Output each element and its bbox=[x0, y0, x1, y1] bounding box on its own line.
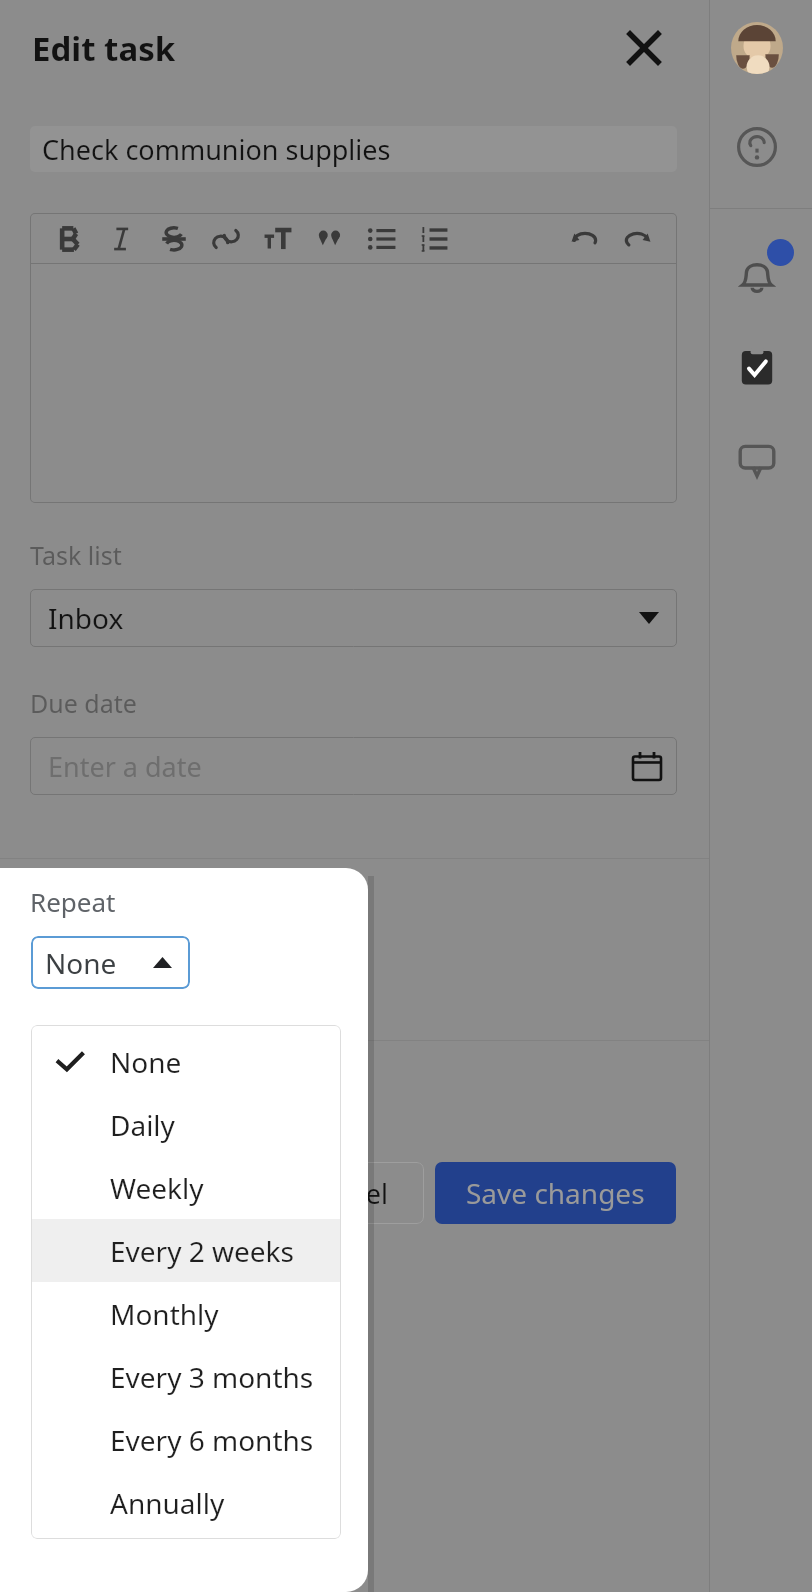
button[interactable]: Tasks bbox=[725, 335, 789, 399]
button[interactable]: Bulleted list bbox=[356, 214, 408, 264]
staticText: Inbox bbox=[48, 599, 124, 637]
button[interactable]: Weekly bbox=[31, 1156, 341, 1219]
staticText: Task list bbox=[30, 538, 122, 572]
staticText: Cancel bbox=[304, 1175, 389, 1212]
button[interactable]: Annually bbox=[31, 1471, 341, 1534]
button[interactable]: Italic bbox=[96, 214, 148, 264]
button[interactable]: Account bbox=[731, 22, 783, 74]
button[interactable]: Notifications bbox=[725, 245, 789, 309]
staticText: Weekly bbox=[110, 1169, 204, 1207]
button[interactable]: Help bbox=[725, 115, 789, 179]
staticText: Repeat bbox=[30, 884, 116, 919]
staticText: None bbox=[45, 944, 117, 982]
button[interactable]: Every 6 months bbox=[31, 1408, 341, 1471]
button[interactable]: Undo bbox=[559, 214, 611, 264]
button[interactable]: Enter a date bbox=[30, 737, 677, 795]
button[interactable]: Save changes bbox=[435, 1162, 676, 1224]
staticText: None bbox=[110, 1043, 182, 1081]
button[interactable]: Close bbox=[614, 18, 674, 78]
button[interactable]: Every 3 months bbox=[31, 1345, 341, 1408]
staticText: Every 3 months bbox=[110, 1358, 314, 1396]
button[interactable]: Feedback bbox=[725, 428, 789, 492]
button[interactable]: Insert link bbox=[200, 214, 252, 264]
staticText: Every 6 months bbox=[110, 1421, 314, 1459]
button[interactable]: Daily bbox=[31, 1093, 341, 1156]
button[interactable]: Task list: Inbox bbox=[30, 589, 677, 647]
staticText: Enter a date bbox=[48, 748, 202, 785]
button[interactable]: Repeat: None bbox=[31, 936, 190, 989]
button[interactable]: Check communion supplies bbox=[30, 126, 677, 172]
button[interactable]: Every 2 weeks bbox=[31, 1219, 341, 1282]
button[interactable]: Cancel bbox=[268, 1162, 424, 1224]
button[interactable]: Quote bbox=[304, 214, 356, 264]
staticText: Due date bbox=[30, 686, 137, 720]
button[interactable]: Monthly bbox=[31, 1282, 341, 1345]
button[interactable]: None bbox=[31, 1030, 341, 1093]
staticText: Daily bbox=[110, 1106, 175, 1144]
button[interactable]: Numbered list bbox=[408, 214, 460, 264]
staticText: Every 2 weeks bbox=[110, 1232, 294, 1270]
staticText: Annually bbox=[110, 1484, 225, 1522]
button[interactable]: Strikethrough bbox=[148, 214, 200, 264]
button[interactable]: Bold bbox=[44, 214, 96, 264]
button[interactable]: Text size bbox=[252, 214, 304, 264]
staticText: Monthly bbox=[110, 1295, 219, 1333]
staticText: Check communion supplies bbox=[42, 131, 391, 168]
button[interactable]: Redo bbox=[611, 214, 663, 264]
staticText: Save changes bbox=[466, 1174, 645, 1212]
staticText: Edit task bbox=[32, 26, 176, 71]
